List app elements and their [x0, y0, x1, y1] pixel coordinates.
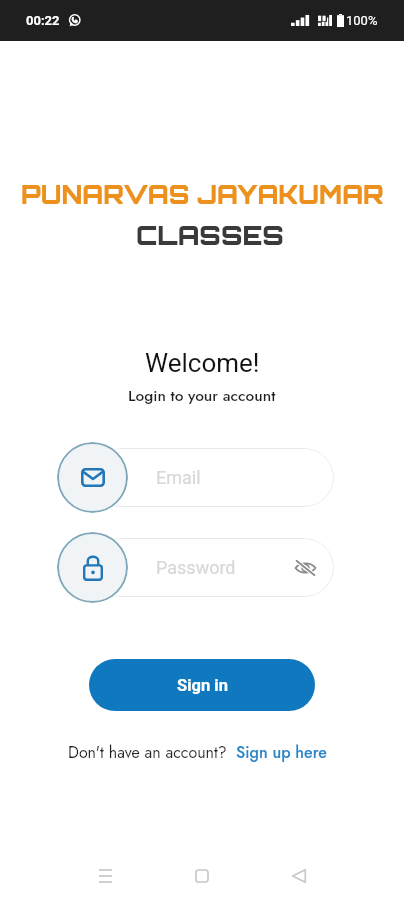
staticText: 00:22 — [26, 13, 60, 28]
staticText: Sign up here — [236, 741, 327, 764]
staticText: Sign in — [177, 676, 228, 695]
button[interactable]: Recents — [85, 856, 125, 896]
button[interactable]: Show password — [290, 553, 320, 583]
staticText: Login to your account — [128, 384, 276, 406]
staticText: 100% — [346, 13, 378, 28]
staticText: Welcome! — [145, 348, 260, 378]
button[interactable]: Back — [279, 856, 319, 896]
staticText: Password — [156, 557, 236, 578]
button[interactable]: Sign up here — [236, 741, 327, 764]
button[interactable]: Sign in — [89, 659, 315, 711]
staticText: Email — [156, 467, 201, 488]
button[interactable]: Password — [91, 538, 334, 597]
staticText: Don't have an account? — [68, 741, 227, 764]
staticText: PUNARVAS JAYAKUMAR — [21, 179, 384, 210]
button[interactable]: Email — [91, 448, 334, 507]
button[interactable]: Home — [182, 856, 222, 896]
staticText: CLASSES — [136, 219, 284, 252]
